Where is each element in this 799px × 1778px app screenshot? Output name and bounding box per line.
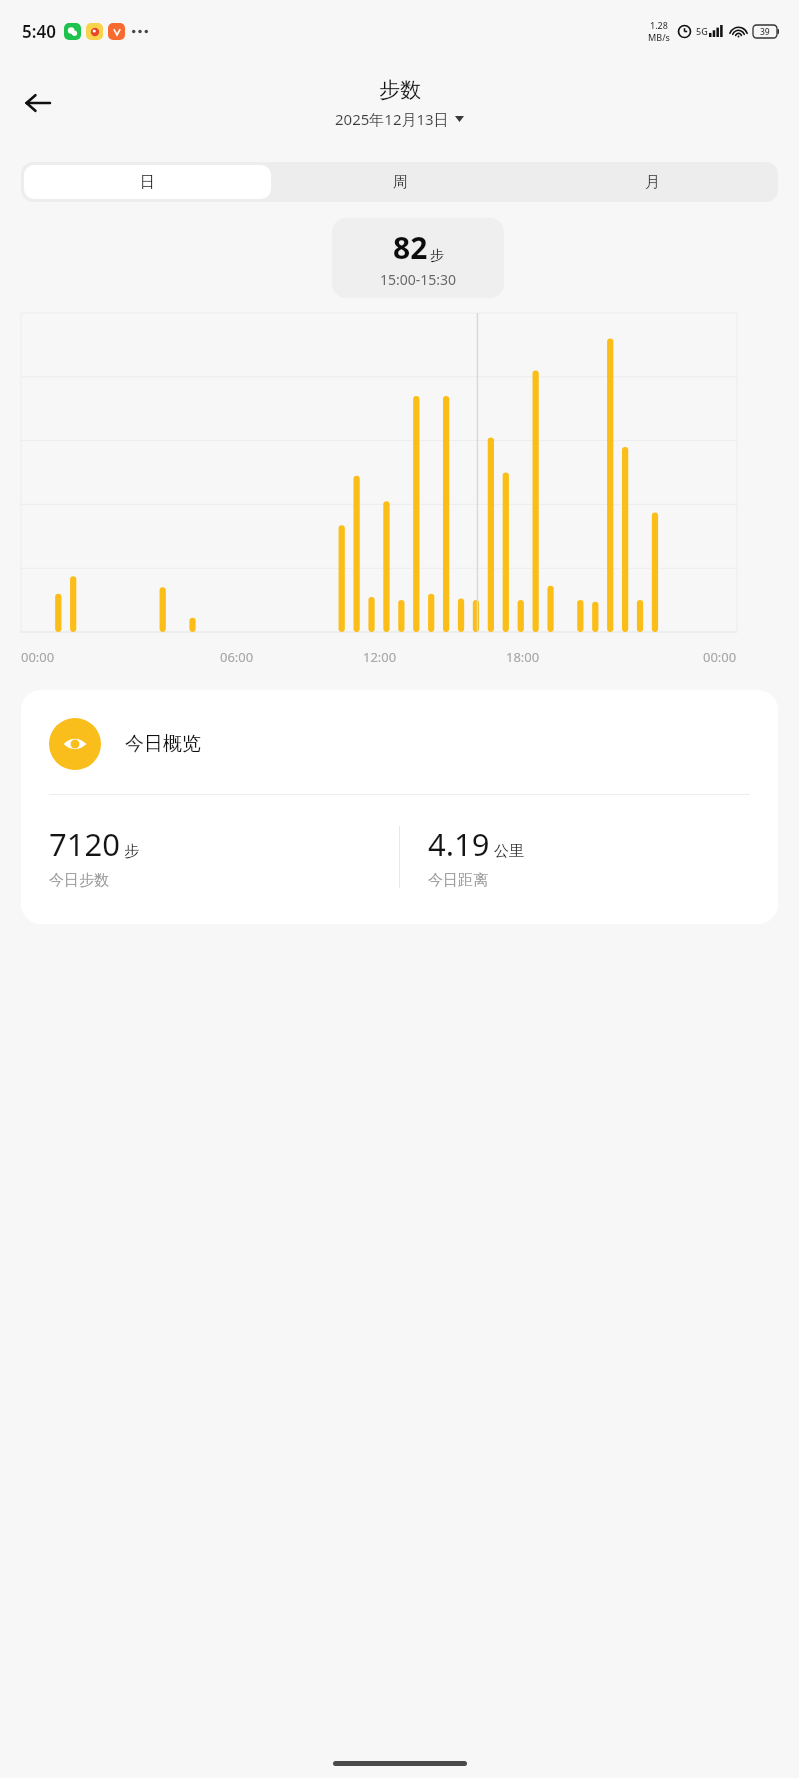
staticText: 7120 <box>49 823 120 865</box>
staticText: 18:00 <box>506 648 540 666</box>
staticText: 公里 <box>494 842 524 861</box>
staticText: 步 <box>124 842 139 861</box>
staticText: 今日步数 <box>49 871 109 890</box>
staticText: MB/s <box>648 31 670 43</box>
staticText: 1.28 <box>650 19 668 31</box>
staticText: 今日距离 <box>428 871 488 890</box>
staticText: 2025年12月13日 <box>335 109 449 129</box>
staticText: 4.19 <box>428 823 490 865</box>
staticText: 00:00 <box>703 648 737 666</box>
staticText: 月 <box>645 173 660 192</box>
staticText: 周 <box>393 173 408 192</box>
staticText: 今日概览 <box>125 732 201 756</box>
button[interactable]: 日 <box>24 165 271 199</box>
staticText: 12:00 <box>363 648 397 666</box>
staticText: 06:00 <box>220 648 254 666</box>
button[interactable]: Back <box>14 79 62 127</box>
staticText: 步数 <box>379 77 421 103</box>
button[interactable]: 今日概览 <box>21 690 778 924</box>
staticText: 步 <box>430 247 444 265</box>
staticText: 15:00-15:30 <box>380 270 457 289</box>
staticText: 00:00 <box>21 648 55 666</box>
button[interactable]: 2025年12月13日 <box>333 108 466 130</box>
staticText: 日 <box>140 173 155 192</box>
staticText: 5:40 <box>22 20 56 43</box>
staticText: 82 <box>393 227 428 268</box>
button[interactable]: 周 <box>277 165 523 199</box>
staticText: 39 <box>760 26 770 38</box>
button[interactable]: 月 <box>529 165 775 199</box>
staticText: 5G <box>696 25 708 37</box>
